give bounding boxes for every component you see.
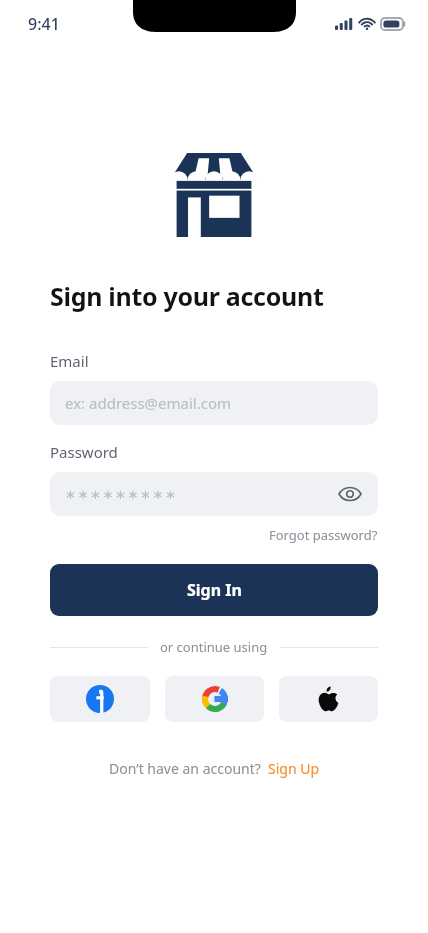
staticText: 9:41 [28, 13, 60, 35]
staticText: ex: address@email.com [65, 393, 232, 413]
staticText: or continue using [160, 638, 268, 656]
staticText: Email [50, 351, 89, 371]
button[interactable]: Sign in with Facebook [50, 676, 150, 722]
button[interactable]: Sign In [50, 564, 378, 616]
button[interactable]: Sign in with Google [165, 676, 264, 722]
button[interactable]: Show password [337, 481, 363, 507]
staticText: Forgot password? [269, 526, 378, 544]
button[interactable]: Sign in with Apple [279, 676, 378, 722]
button[interactable]: Forgot password? [269, 526, 378, 544]
staticText: Sign Up [268, 759, 320, 778]
button[interactable]: Sign Up [268, 759, 320, 778]
button[interactable]: ex: address@email.com [50, 381, 378, 425]
staticText: ∗∗∗∗∗∗∗∗∗ [65, 487, 178, 502]
staticText: Sign In [187, 579, 242, 601]
staticText: Sign into your account [50, 279, 324, 313]
staticText: Don’t have an account? [109, 759, 261, 778]
button[interactable]: ∗∗∗∗∗∗∗∗∗ [50, 472, 378, 516]
staticText: Password [50, 442, 118, 462]
